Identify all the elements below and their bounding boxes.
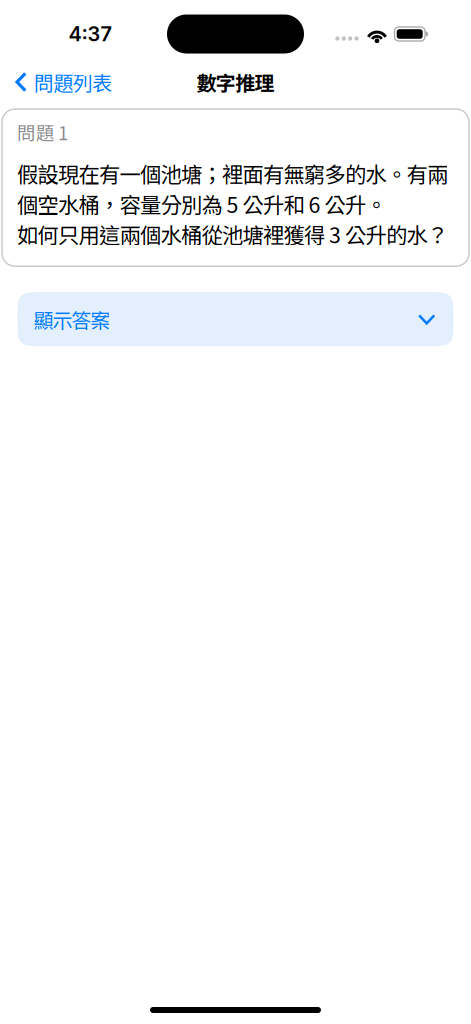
staticText: 問題 1 — [17, 118, 68, 145]
button[interactable]: 問題列表 — [0, 60, 122, 104]
staticText: 如何只用這兩個水桶從池塘裡獲得 3 公升的水？ — [17, 219, 448, 249]
staticText: 數字推理 — [196, 67, 275, 96]
staticText: 顯示答案 — [33, 305, 110, 334]
staticText: 個空水桶，容量分別為 5 公升和 6 公升。 — [17, 188, 386, 219]
staticText: 4:37 — [68, 22, 111, 46]
staticText: 問題列表 — [34, 67, 112, 96]
staticText: 假設現在有一個池塘；裡面有無窮多的水。有兩 — [17, 158, 448, 189]
button[interactable]: 顯示答案 — [17, 292, 453, 346]
